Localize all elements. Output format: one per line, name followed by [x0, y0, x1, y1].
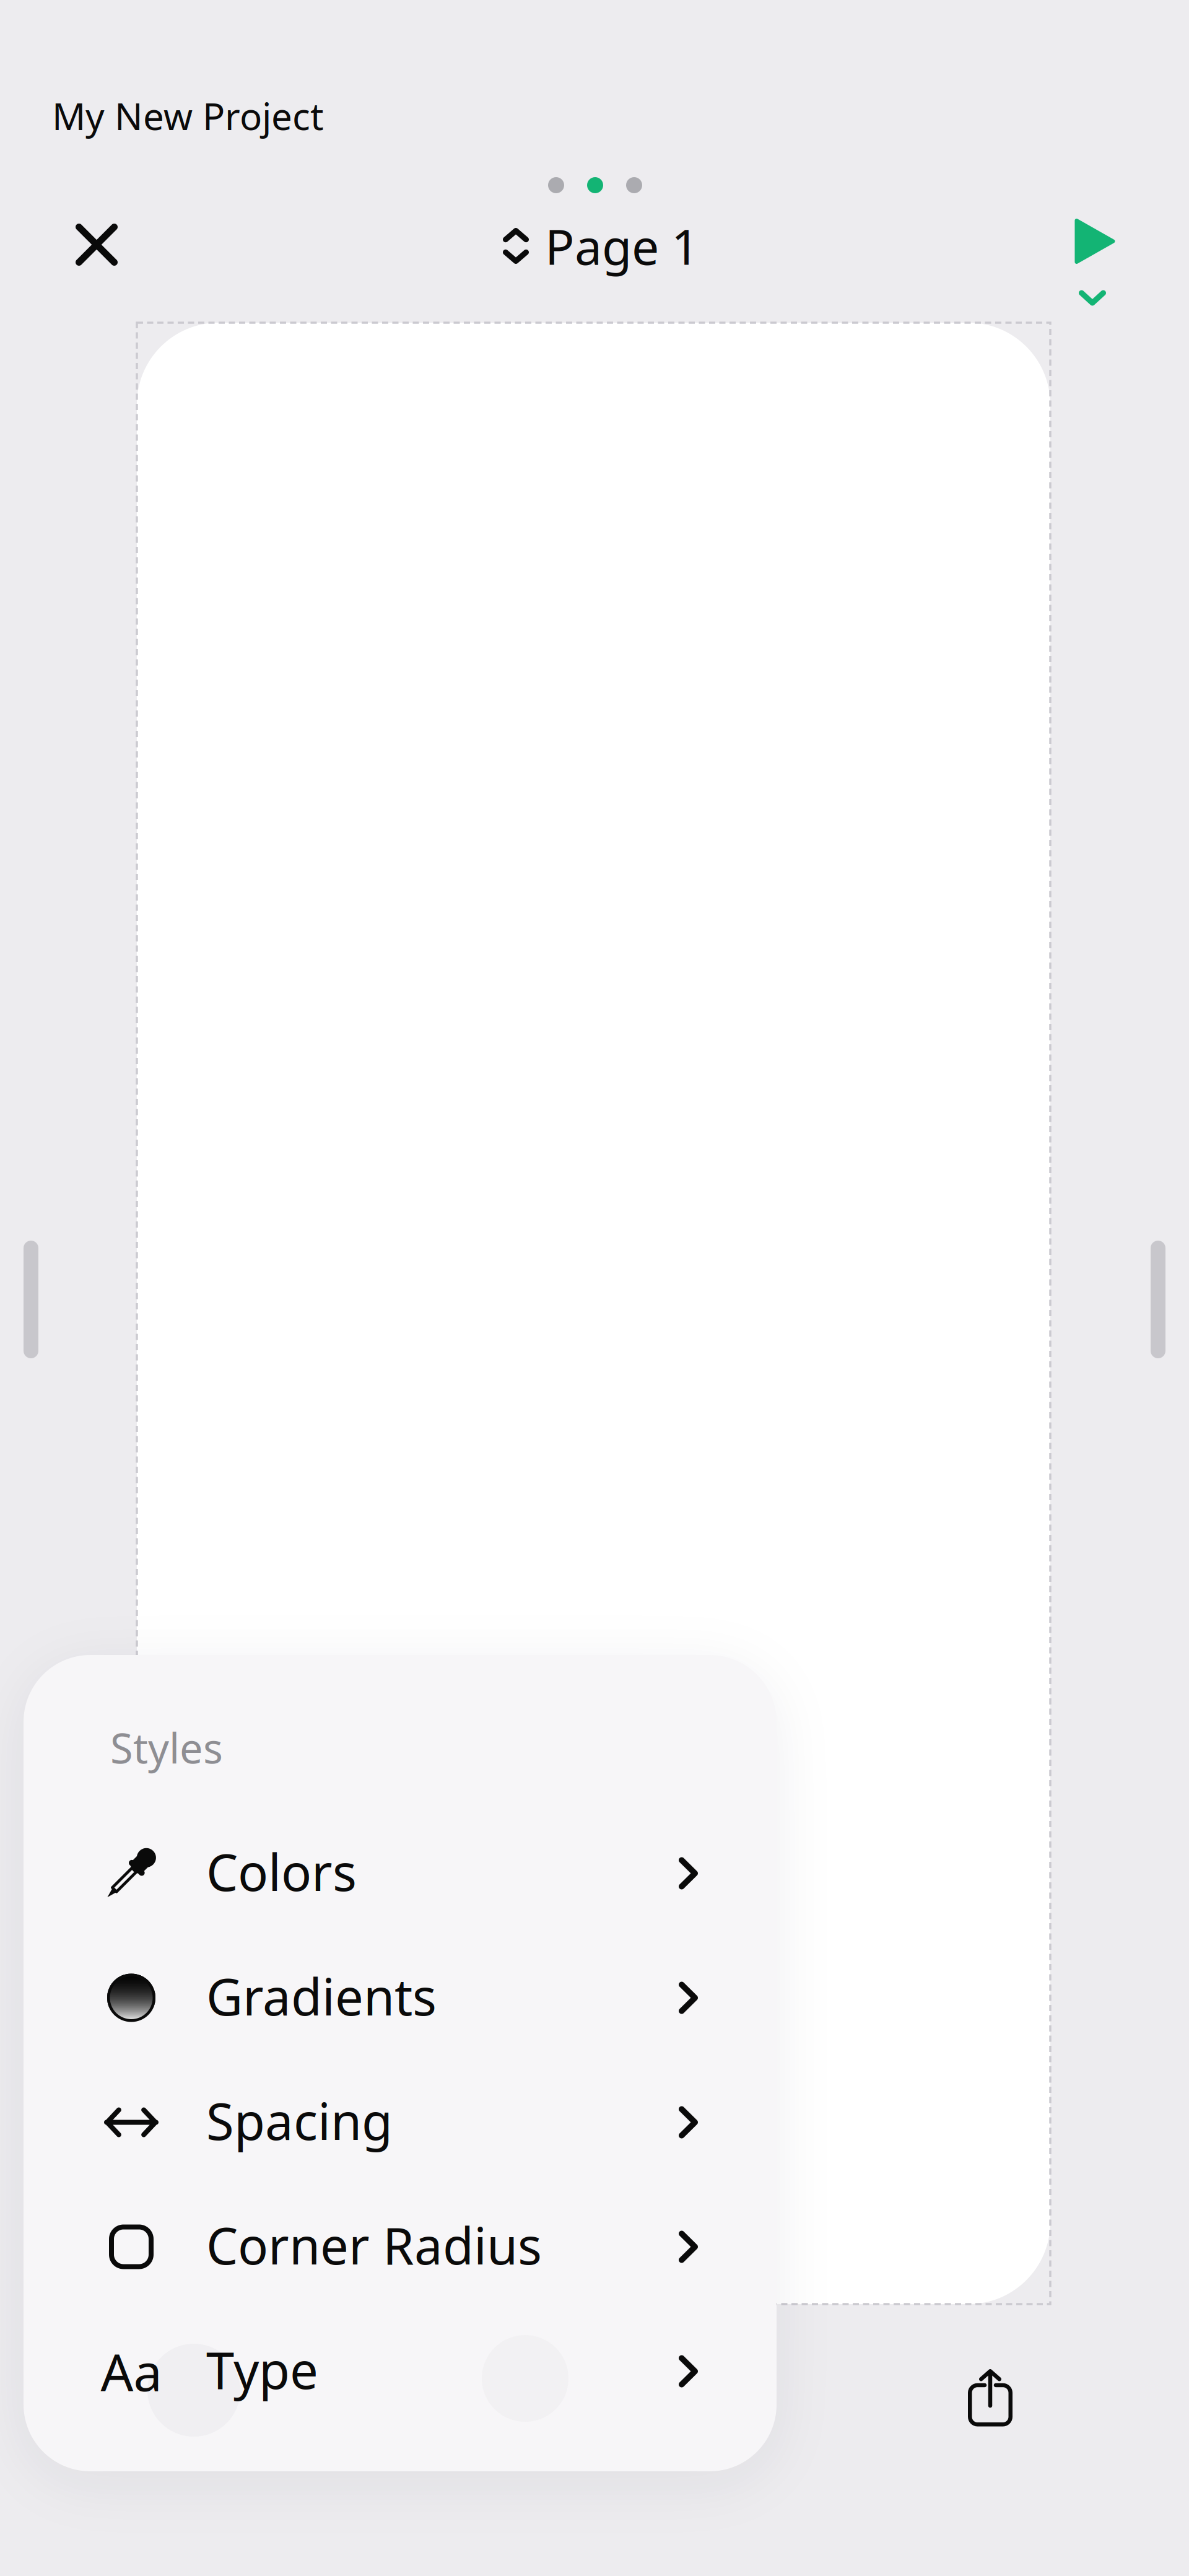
staticText: Styles [110, 1720, 223, 1775]
button[interactable]: Colors [24, 1811, 779, 1936]
staticText: Spacing [206, 2087, 393, 2154]
staticText: Gradients [206, 1963, 437, 2029]
button[interactable]: Close [56, 204, 137, 285]
staticText: Page 1 [545, 214, 699, 278]
button[interactable]: Aa [24, 2309, 779, 2434]
staticText: Type [206, 2336, 318, 2403]
button[interactable]: Gradients [24, 1936, 779, 2060]
staticText: Corner Radius [206, 2211, 542, 2278]
button[interactable]: Play preview [1055, 219, 1135, 303]
staticText: My New Project [52, 91, 324, 140]
staticText: Aa [101, 2337, 162, 2405]
button[interactable]: Spacing [24, 2060, 779, 2185]
button[interactable]: Page 1 [503, 209, 699, 283]
staticText: Colors [206, 1838, 357, 1905]
button[interactable]: Share [950, 2357, 1030, 2437]
button[interactable]: Corner Radius [24, 2185, 779, 2309]
